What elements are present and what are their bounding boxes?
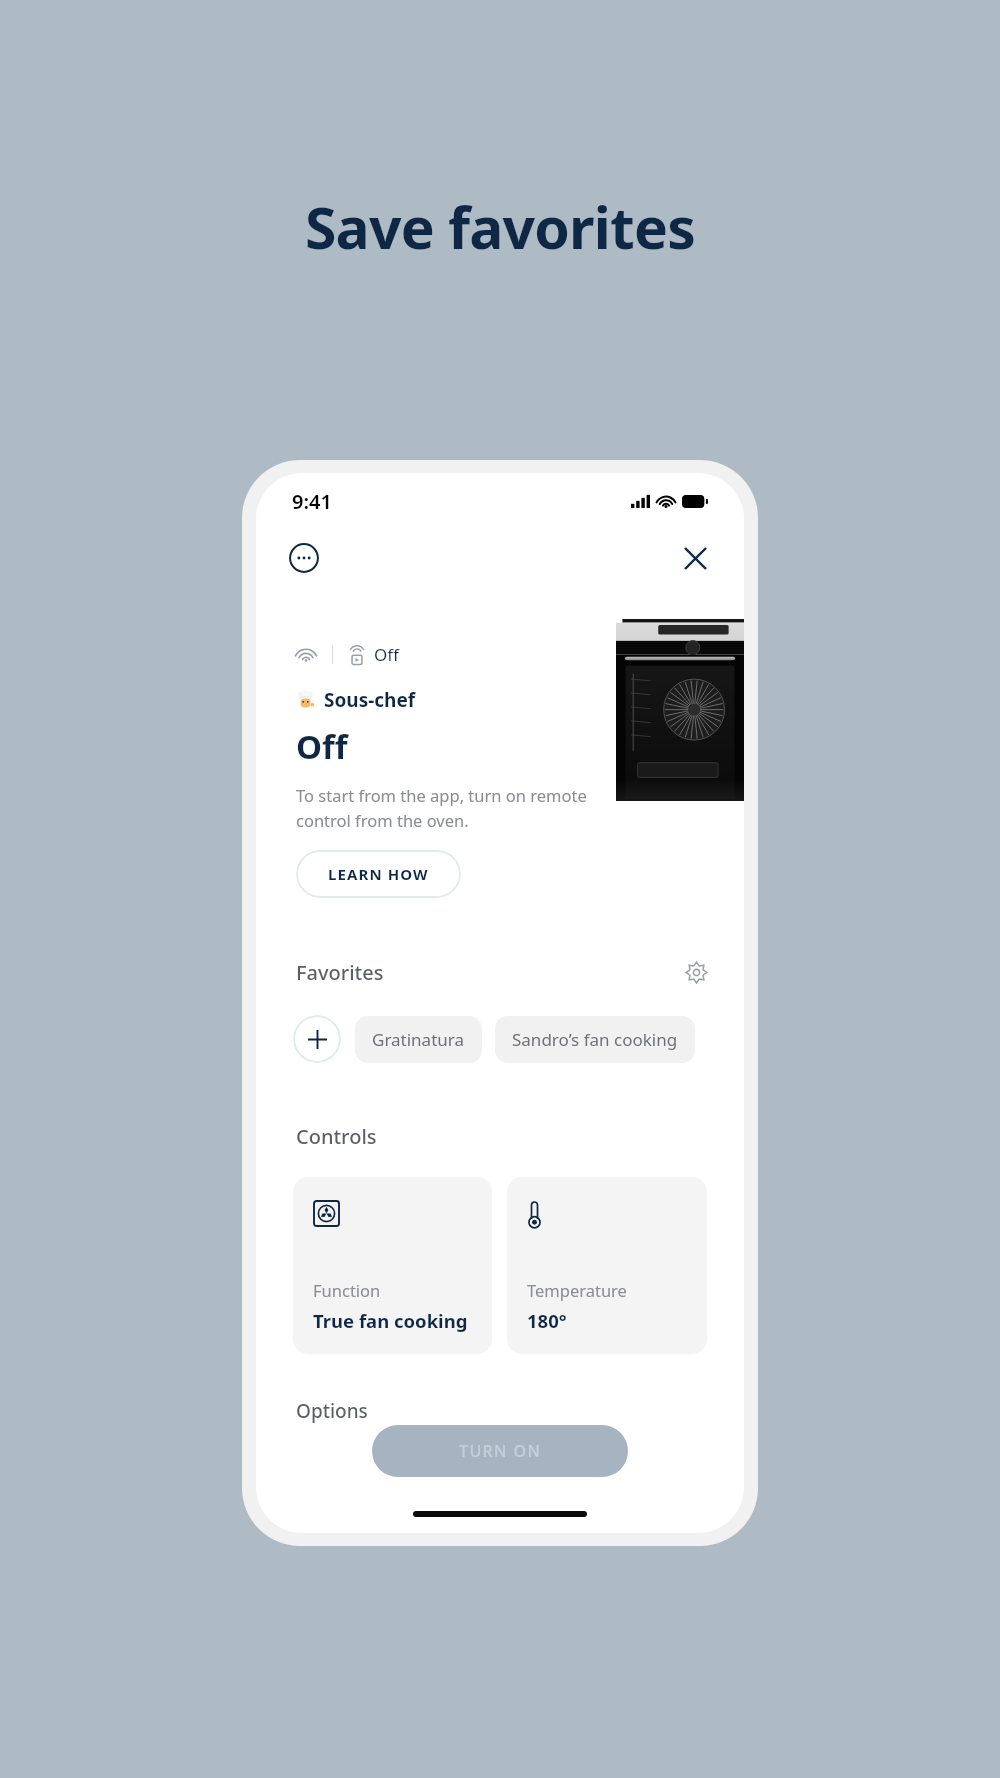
staticText: Save favorites bbox=[305, 188, 696, 266]
button[interactable]: Sandro’s fan cooking bbox=[495, 1016, 695, 1063]
staticText: 180° bbox=[527, 1308, 567, 1333]
staticText: Function bbox=[313, 1279, 381, 1301]
staticText: TURN ON bbox=[459, 1440, 542, 1462]
staticText: Gratinatura bbox=[372, 1028, 465, 1051]
button[interactable]: Function bbox=[293, 1177, 492, 1354]
staticText: Sandro’s fan cooking bbox=[512, 1028, 678, 1051]
staticText: Sous-chef bbox=[324, 687, 416, 713]
staticText: Temperature bbox=[527, 1279, 627, 1301]
staticText: LEARN HOW bbox=[328, 864, 429, 884]
staticText: Favorites bbox=[296, 959, 384, 986]
button[interactable]: TURN ON bbox=[372, 1425, 628, 1477]
button[interactable]: LEARN HOW bbox=[296, 850, 461, 898]
button[interactable]: More options bbox=[286, 540, 322, 576]
staticText: Off bbox=[374, 643, 399, 666]
staticText: 9:41 bbox=[292, 488, 332, 515]
staticText: Off bbox=[296, 724, 348, 769]
button[interactable]: Close bbox=[676, 539, 714, 577]
button[interactable]: Temperature bbox=[507, 1177, 707, 1354]
button[interactable]: Favorites settings bbox=[678, 954, 714, 990]
staticText: Controls bbox=[296, 1123, 377, 1150]
staticText: To start from the app, turn on remote co… bbox=[296, 784, 596, 831]
button[interactable]: Gratinatura bbox=[355, 1016, 482, 1063]
staticText: Options bbox=[296, 1398, 368, 1424]
button[interactable]: Add favorite bbox=[293, 1015, 341, 1063]
staticText: True fan cooking bbox=[313, 1308, 468, 1333]
